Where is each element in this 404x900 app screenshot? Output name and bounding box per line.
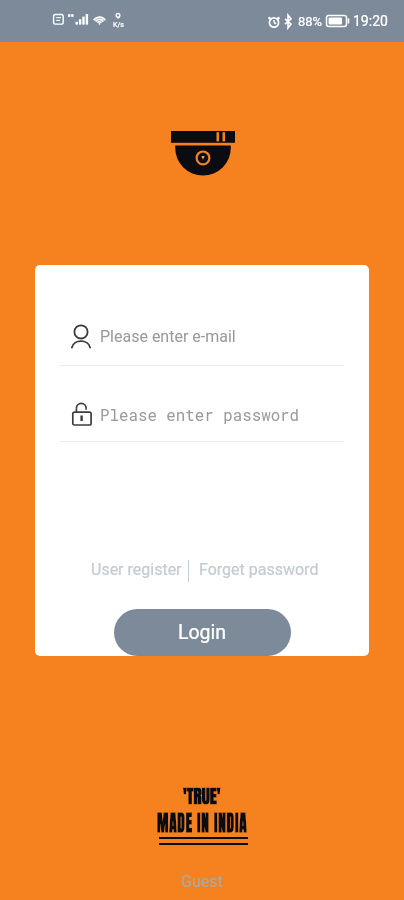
- button[interactable]: Forget password: [199, 560, 319, 579]
- staticText: Forget password: [199, 560, 319, 579]
- staticText: 88%: [298, 14, 323, 29]
- staticText: 19:20: [353, 13, 388, 29]
- staticText: Please enter password: [100, 404, 300, 425]
- button[interactable]: User register: [91, 560, 182, 579]
- staticText: MADE IN INDIA: [157, 806, 248, 839]
- staticText: Please enter e-mail: [100, 327, 236, 346]
- staticText: 'TRUE': [183, 782, 221, 811]
- staticText: Guest: [181, 872, 223, 891]
- staticText: Login: [178, 621, 227, 644]
- staticText: K/s: [113, 21, 124, 29]
- staticText: User register: [91, 560, 182, 579]
- button[interactable]: Guest: [165, 868, 239, 895]
- button[interactable]: Login: [114, 609, 291, 656]
